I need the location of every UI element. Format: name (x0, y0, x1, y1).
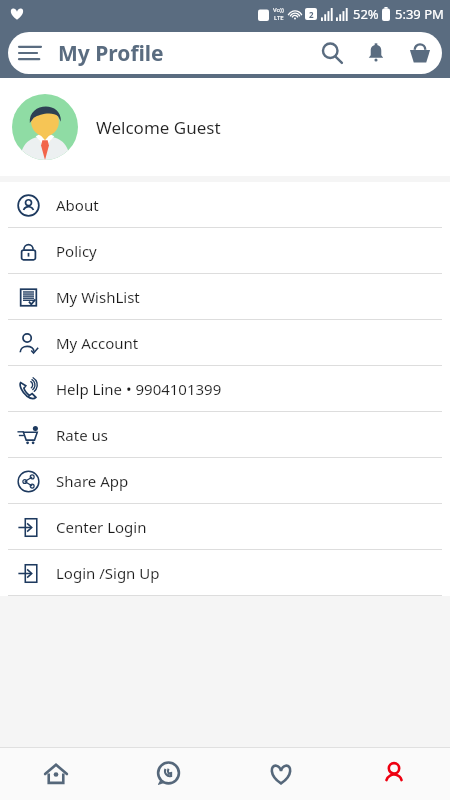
button[interactable]: Notifications (354, 32, 398, 74)
staticText: Login /Sign Up (56, 563, 160, 583)
staticText: My Account (56, 333, 139, 353)
staticText: 5:39 PM (395, 5, 444, 23)
staticText: Vo)) (273, 6, 284, 14)
staticText: Center Login (56, 517, 147, 537)
button[interactable]: Search (310, 32, 354, 74)
button[interactable]: My Account (0, 320, 450, 365)
staticText: Rate us (56, 425, 108, 445)
button[interactable]: Center Login (0, 504, 450, 549)
button[interactable]: Wishlist (224, 748, 337, 800)
staticText: Help Line • 9904101399 (56, 379, 222, 399)
staticText: 52% (353, 5, 379, 23)
button[interactable]: Chat (112, 748, 224, 800)
staticText: Policy (56, 241, 97, 261)
button[interactable]: About (0, 182, 450, 227)
button[interactable]: Menu (8, 32, 52, 74)
button[interactable]: Policy (0, 228, 450, 273)
button[interactable]: Rate us (0, 412, 450, 457)
staticText: 2 (309, 9, 314, 20)
button[interactable]: Profile (337, 748, 450, 800)
staticText: About (56, 195, 99, 215)
staticText: My Profile (58, 39, 310, 68)
button[interactable]: Home (0, 748, 112, 800)
button[interactable]: My WishList (0, 274, 450, 319)
staticText: My WishList (56, 287, 140, 307)
staticText: Welcome Guest (96, 116, 221, 139)
button[interactable]: Cart (398, 32, 442, 74)
button[interactable]: Help Line • 9904101399 (0, 366, 450, 411)
button[interactable]: Login /Sign Up (0, 550, 450, 595)
button[interactable]: Share App (0, 458, 450, 503)
staticText: Share App (56, 471, 129, 491)
staticText: LTE (274, 14, 284, 22)
